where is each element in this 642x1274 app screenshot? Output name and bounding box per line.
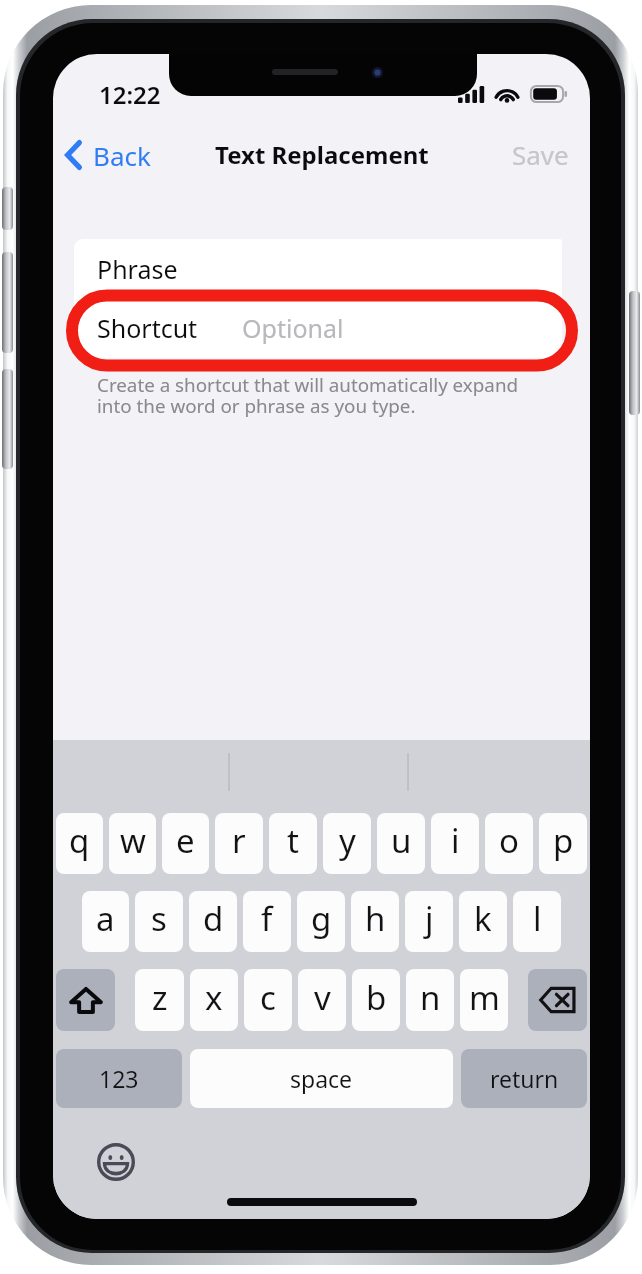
button[interactable]: w [109,813,156,874]
button[interactable]: Emoji keyboard [97,1143,135,1181]
staticText: 12:22 [99,78,161,111]
button[interactable]: m [460,969,508,1031]
staticText: y [339,818,356,863]
button[interactable]: o [485,813,533,874]
staticText: f [261,896,273,941]
staticText: q [69,818,90,863]
button[interactable]: Back [53,129,161,180]
button[interactable]: x [190,969,238,1031]
button[interactable]: l [513,891,561,952]
staticText: 123 [99,1063,139,1094]
button[interactable]: t [269,813,317,874]
button[interactable]: b [352,969,400,1031]
button[interactable]: s [135,891,183,952]
staticText: i [451,818,460,863]
staticText: h [365,896,386,941]
staticText: k [474,896,492,941]
button[interactable]: Save [490,129,590,180]
staticText: space [290,1063,353,1094]
button[interactable]: u [377,813,425,874]
staticText: r [232,818,246,863]
button[interactable]: return [461,1049,587,1108]
staticText: Phrase [97,252,178,286]
staticText: return [490,1063,559,1094]
button[interactable]: 123 [56,1049,182,1108]
button[interactable]: i [431,813,479,874]
button[interactable]: Phrase [74,239,562,298]
staticText: c [260,975,276,1020]
staticText: u [391,818,412,863]
button[interactable]: y [323,813,371,874]
staticText: n [420,975,441,1020]
button[interactable]: Shift [56,969,115,1031]
button[interactable]: g [297,891,345,952]
button[interactable]: Shortcut [74,298,562,358]
button[interactable]: d [189,891,237,952]
staticText: z [152,975,168,1020]
staticText: b [366,975,387,1020]
button[interactable]: h [351,891,399,952]
staticText: a [96,896,115,941]
button[interactable]: c [244,969,292,1031]
button[interactable]: k [459,891,507,952]
button[interactable]: v [298,969,346,1031]
staticText: o [499,818,519,863]
staticText: s [151,896,167,941]
staticText: w [120,818,146,863]
button[interactable]: a [82,891,129,952]
staticText: p [553,818,574,863]
button[interactable]: Backspace [528,969,587,1031]
staticText: Optional [242,311,344,345]
button[interactable]: z [135,969,184,1031]
staticText: v [314,975,331,1020]
staticText: l [533,896,542,941]
staticText: m [469,975,500,1020]
button[interactable]: p [539,813,587,874]
button[interactable]: e [162,813,209,874]
button[interactable]: n [406,969,454,1031]
staticText: e [176,818,195,863]
staticText: Shortcut [97,311,198,345]
staticText: j [425,896,434,941]
staticText: x [205,975,223,1020]
staticText: Text Replacement [215,138,429,171]
staticText: Back [93,138,151,173]
button[interactable]: j [405,891,453,952]
button[interactable]: q [56,813,103,874]
staticText: g [311,896,332,941]
staticText: Create a shortcut that will automaticall… [97,372,519,419]
staticText: d [203,896,224,941]
button[interactable]: space [190,1049,453,1108]
button[interactable]: r [215,813,263,874]
button[interactable]: f [243,891,291,952]
staticText: t [287,818,299,863]
